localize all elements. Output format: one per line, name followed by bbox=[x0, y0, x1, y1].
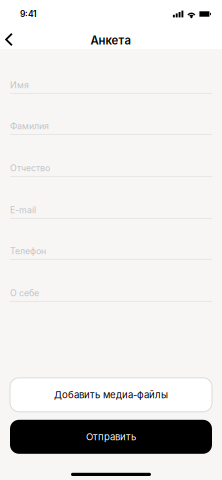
button[interactable]: Отчество bbox=[0, 135, 222, 177]
staticText: Отчество bbox=[10, 163, 50, 173]
staticText: E-mail bbox=[10, 205, 36, 215]
staticText: 9:41 bbox=[20, 9, 37, 19]
staticText: О себе bbox=[10, 288, 39, 298]
button[interactable]: Имя bbox=[0, 52, 222, 94]
button[interactable]: О себе bbox=[0, 260, 222, 302]
button[interactable]: Отправить bbox=[10, 420, 212, 454]
staticText: Анкета bbox=[90, 34, 131, 47]
staticText: Фамилия bbox=[10, 121, 49, 131]
button[interactable]: Назад bbox=[0, 28, 23, 49]
button[interactable]: E-mail bbox=[0, 177, 222, 219]
staticText: Отправить bbox=[86, 431, 136, 443]
button[interactable]: Фамилия bbox=[0, 94, 222, 135]
button[interactable]: Телефон bbox=[0, 219, 222, 260]
button[interactable]: Добавить медиа-файлы bbox=[10, 378, 212, 412]
staticText: Имя bbox=[10, 80, 29, 90]
staticText: Телефон bbox=[10, 246, 46, 256]
staticText: Добавить медиа-файлы bbox=[54, 389, 168, 401]
